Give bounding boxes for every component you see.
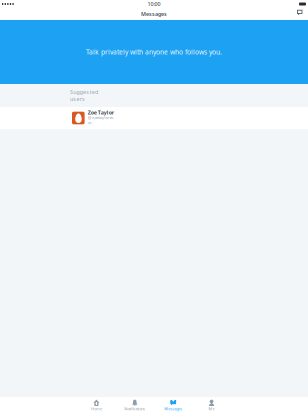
staticText: Suggested users xyxy=(70,88,98,103)
staticText: @zoetaylorwnt xyxy=(88,115,114,125)
staticText: Zoe Taylor xyxy=(88,109,114,116)
button[interactable]: Messages xyxy=(154,397,192,412)
button[interactable]: Zoe Taylor xyxy=(0,107,308,129)
staticText: Talk privately with anyone who follows y… xyxy=(86,48,222,56)
button[interactable]: Me xyxy=(192,397,231,412)
staticText: 10:00 xyxy=(147,0,160,8)
staticText: Notifications xyxy=(124,406,145,411)
staticText: Me xyxy=(209,406,215,411)
button[interactable]: New message xyxy=(297,10,308,18)
staticText: Messages xyxy=(164,406,182,411)
staticText: Messages xyxy=(141,10,167,18)
button[interactable]: Home xyxy=(77,397,116,412)
button[interactable]: Notifications xyxy=(116,397,154,412)
staticText: Home xyxy=(91,406,102,411)
